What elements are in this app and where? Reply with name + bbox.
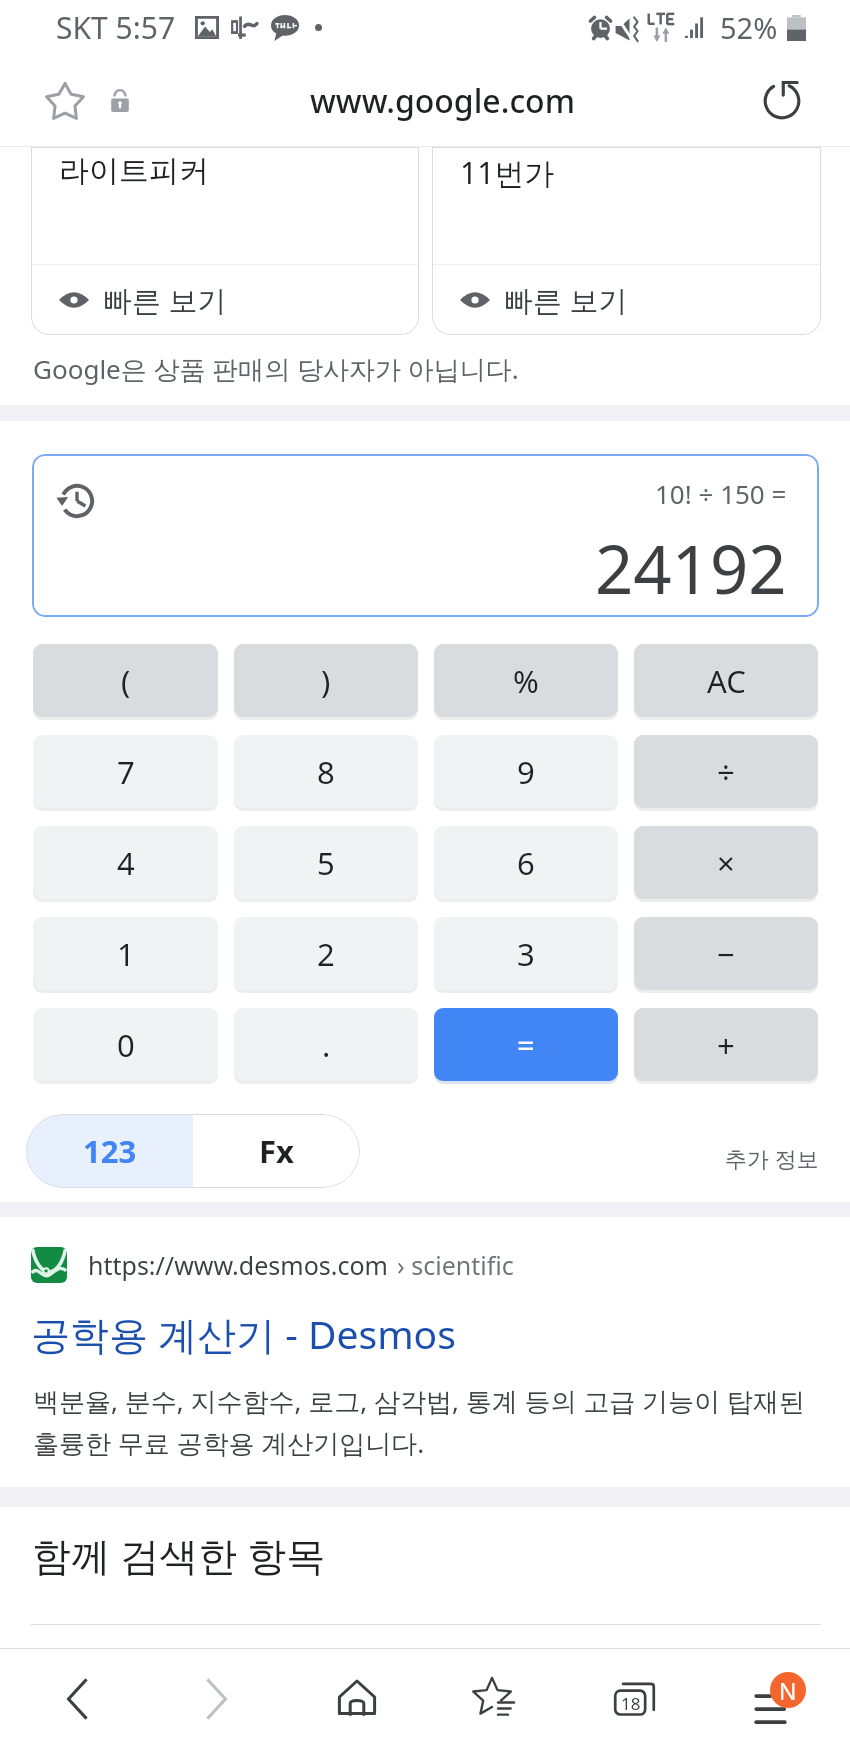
staticText: 18 (621, 1692, 641, 1715)
button[interactable]: 7 (33, 735, 218, 808)
staticText: 10! ÷ 150 = (655, 476, 787, 511)
staticText: % (513, 660, 539, 702)
staticText: 24192 (595, 522, 787, 613)
staticText: 백분율, 분수, 지수함수, 로그, 삼각법, 통계 등의 고급 기능이 탑재된… (33, 1383, 834, 1461)
staticText: 7 (117, 751, 135, 793)
button[interactable]: 11번가 (432, 147, 821, 335)
button[interactable]: = (434, 1008, 618, 1081)
button[interactable]: Home (287, 1649, 426, 1748)
button[interactable]: AC (634, 644, 818, 717)
staticText: 0 (117, 1024, 135, 1066)
button[interactable]: Back (7, 1649, 147, 1748)
button[interactable]: 123 (26, 1114, 193, 1188)
button[interactable]: 2 (234, 917, 418, 990)
staticText: − (717, 933, 735, 975)
button[interactable]: 6 (434, 826, 618, 899)
button[interactable]: 라이트피커 (31, 147, 419, 335)
button[interactable]: 5 (234, 826, 418, 899)
button[interactable]: 추가 정보 (725, 1143, 819, 1173)
button[interactable]: . (234, 1008, 418, 1081)
button[interactable]: ÷ (634, 735, 818, 808)
button[interactable]: ( (33, 644, 218, 717)
button[interactable]: Fx (193, 1114, 360, 1188)
button[interactable]: 공학용 계산기 - Desmos (31, 1307, 456, 1360)
button[interactable]: × (634, 826, 818, 899)
button[interactable]: Bookmarks (426, 1649, 565, 1748)
staticText: 3 (517, 933, 535, 975)
staticText: . (322, 1024, 331, 1066)
button[interactable]: % (434, 644, 618, 717)
staticText: Google은 상품 판매의 당사자가 아닙니다. (33, 351, 519, 387)
staticText: 123 (83, 1130, 137, 1172)
staticText: 1 (117, 933, 135, 975)
staticText: AC (707, 660, 746, 702)
staticText: › scientific (397, 1248, 514, 1282)
staticText: 9 (517, 751, 535, 793)
staticText: + (717, 1024, 735, 1066)
button[interactable]: ) (234, 644, 418, 717)
staticText: 빠른 보기 (504, 280, 628, 320)
staticText: SKT 5:57 (56, 7, 176, 48)
button[interactable]: 8 (234, 735, 418, 808)
staticText: ) (321, 660, 331, 702)
button[interactable]: Bookmark (42, 78, 88, 124)
staticText: 52% (720, 8, 778, 47)
button[interactable]: 9 (434, 735, 618, 808)
staticText: 6 (517, 842, 535, 884)
staticText: 추가 정보 (725, 1143, 819, 1173)
staticText: 2 (317, 933, 335, 975)
staticText: 공학용 계산기 - Desmos (31, 1307, 456, 1360)
button[interactable]: + (634, 1008, 818, 1081)
staticText: = (517, 1024, 535, 1066)
staticText: 빠른 보기 (103, 280, 227, 320)
staticText: × (717, 842, 735, 884)
button[interactable]: Tabs (565, 1649, 704, 1748)
staticText: 11번가 (460, 152, 555, 193)
staticText: 5 (317, 842, 335, 884)
staticText: ( (121, 660, 131, 702)
button[interactable]: Forward (147, 1649, 287, 1748)
staticText: N (779, 1675, 797, 1706)
staticText: www.google.com (310, 79, 575, 123)
staticText: 4 (117, 842, 135, 884)
button[interactable]: − (634, 917, 818, 990)
button[interactable]: 3 (434, 917, 618, 990)
button[interactable]: 10! ÷ 150 = (32, 454, 819, 617)
button[interactable]: 4 (33, 826, 218, 899)
staticText: 8 (317, 751, 335, 793)
staticText: Fx (259, 1130, 294, 1172)
staticText: https://www.desmos.com (88, 1248, 388, 1282)
button[interactable]: Reload (756, 75, 808, 127)
staticText: ÷ (717, 751, 735, 793)
button[interactable]: Menu (704, 1649, 843, 1748)
button[interactable]: 1 (33, 917, 218, 990)
button[interactable]: 0 (33, 1008, 218, 1081)
staticText: 함께 검색한 항목 (32, 1528, 326, 1581)
staticText: 라이트피커 (59, 152, 209, 190)
